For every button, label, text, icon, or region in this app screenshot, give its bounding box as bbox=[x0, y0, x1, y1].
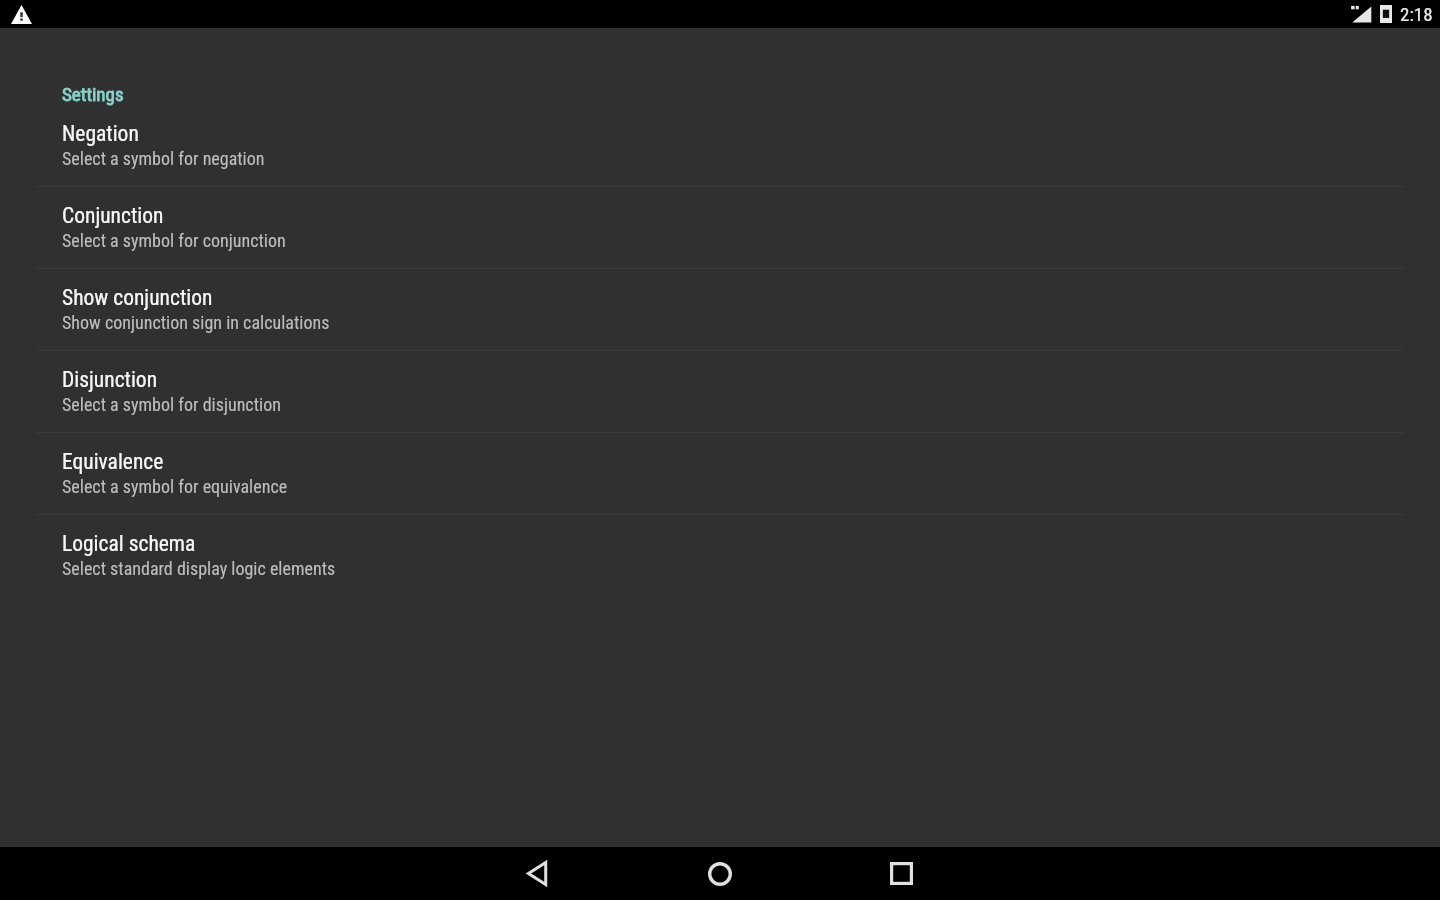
staticText: Select a symbol for negation bbox=[62, 148, 265, 169]
button[interactable]: Logical schema bbox=[0, 515, 1440, 597]
staticText: Conjunction bbox=[62, 203, 164, 228]
button[interactable]: Equivalence bbox=[0, 433, 1440, 515]
staticText: Show conjunction bbox=[62, 285, 213, 310]
button[interactable]: Home bbox=[686, 847, 754, 900]
button[interactable]: Conjunction bbox=[0, 187, 1440, 269]
staticText: Logical schema bbox=[62, 531, 196, 556]
staticText: Settings bbox=[62, 83, 124, 105]
button[interactable]: Negation bbox=[0, 105, 1440, 187]
staticText: Select a symbol for equivalence bbox=[62, 476, 288, 497]
staticText: Disjunction bbox=[62, 367, 158, 392]
button[interactable]: Disjunction bbox=[0, 351, 1440, 433]
staticText: Select a symbol for conjunction bbox=[62, 230, 286, 251]
other: Warning notification bbox=[11, 5, 32, 24]
staticText: Show conjunction sign in calculations bbox=[62, 312, 330, 333]
staticText: Negation bbox=[62, 121, 139, 146]
staticText: Equivalence bbox=[62, 449, 164, 474]
other: Battery bbox=[1380, 5, 1392, 23]
button[interactable]: Recent apps bbox=[867, 847, 935, 900]
button[interactable]: Back bbox=[505, 847, 573, 900]
staticText: Select a symbol for disjunction bbox=[62, 394, 281, 415]
staticText: 2:18 bbox=[1400, 3, 1433, 25]
other: Mobile signal bbox=[1350, 5, 1372, 23]
button[interactable]: Show conjunction bbox=[0, 269, 1440, 351]
staticText: Select standard display logic elements bbox=[62, 558, 336, 579]
